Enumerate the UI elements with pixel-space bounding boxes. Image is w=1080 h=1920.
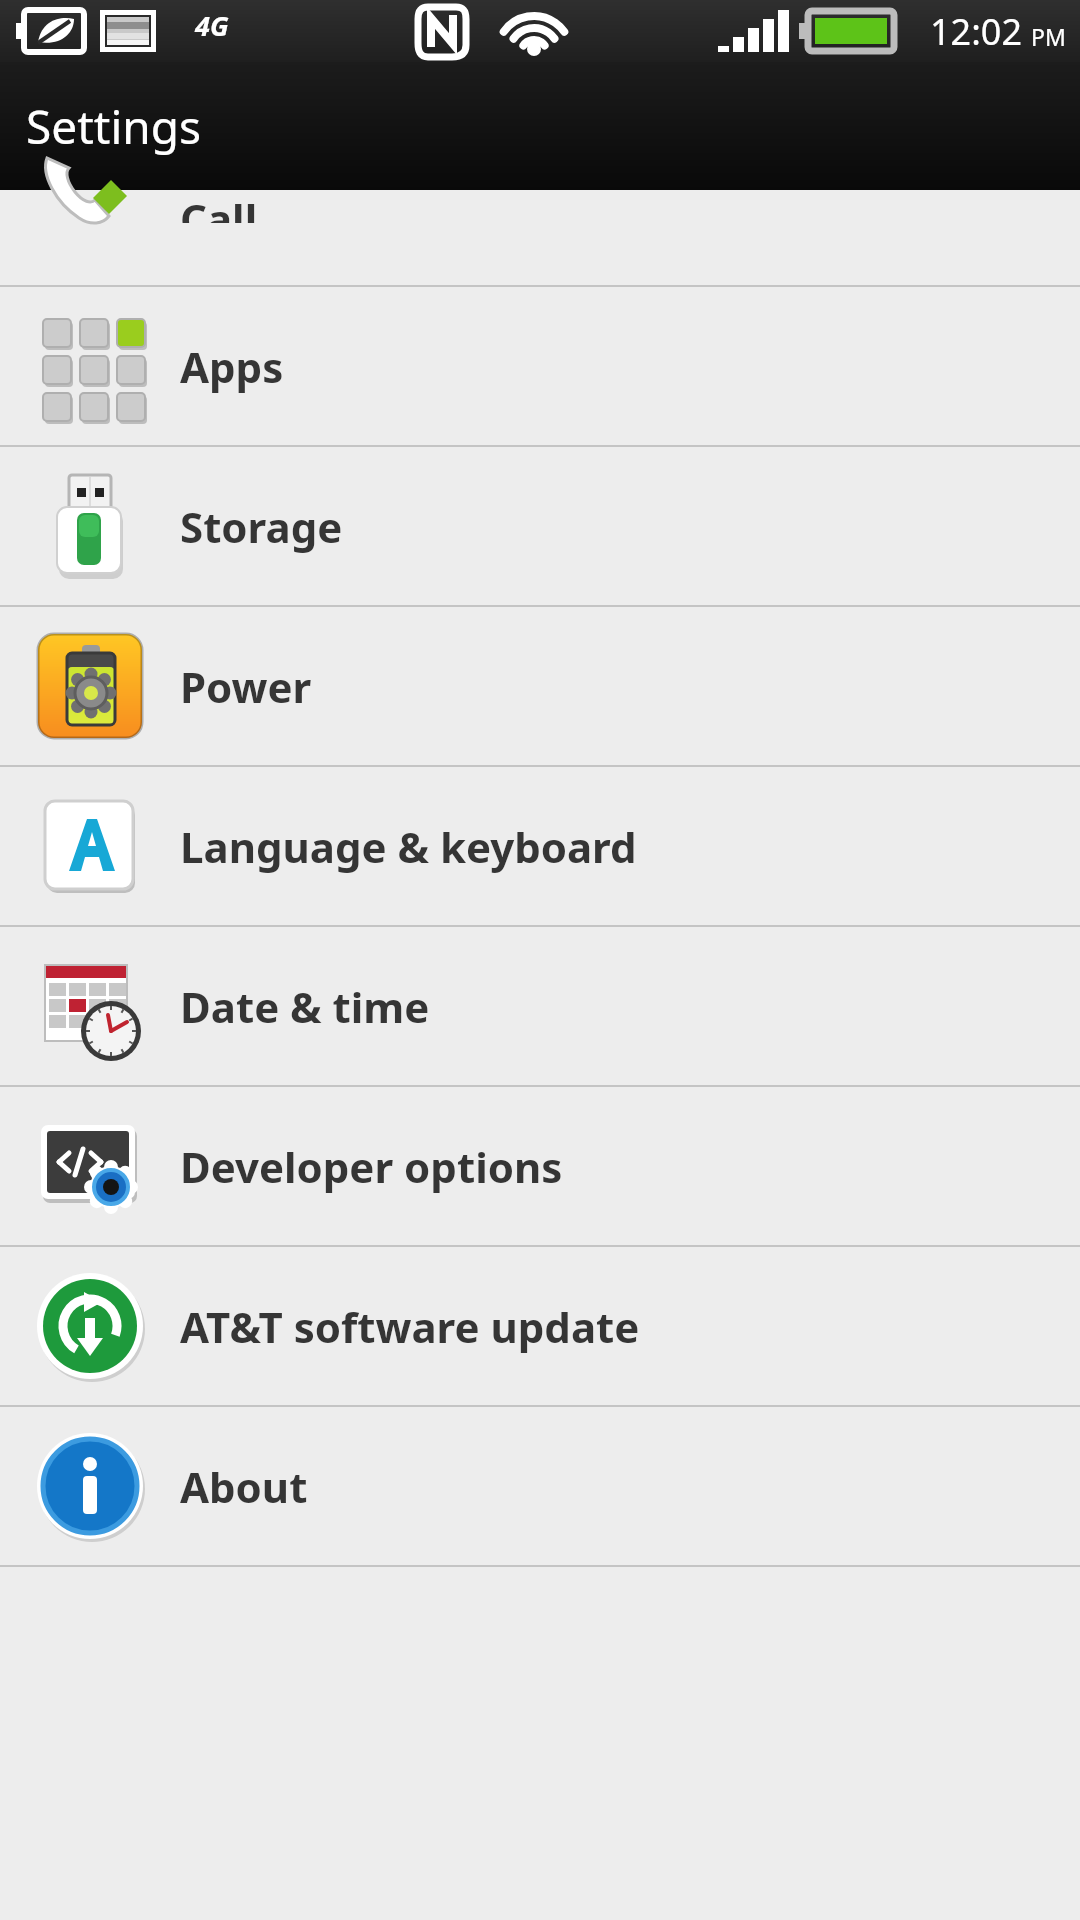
button[interactable]: Power xyxy=(0,607,1080,765)
staticText: Storage xyxy=(180,498,343,555)
button[interactable]: Date & time xyxy=(0,927,1080,1085)
button[interactable]: Language & keyboard xyxy=(0,767,1080,925)
button[interactable]: Apps xyxy=(0,287,1080,445)
staticText: Apps xyxy=(180,338,284,395)
button[interactable]: About xyxy=(0,1407,1080,1565)
staticText: Date & time xyxy=(180,978,430,1035)
staticText: 4G xyxy=(195,7,229,44)
staticText: AT&T software update xyxy=(180,1298,640,1355)
staticText: Language & keyboard xyxy=(180,818,637,875)
button[interactable]: Call xyxy=(0,190,1080,285)
staticText: About xyxy=(180,1458,308,1515)
staticText: Call xyxy=(180,190,258,223)
staticText: Developer options xyxy=(180,1138,563,1195)
button[interactable]: Storage xyxy=(0,447,1080,605)
button[interactable]: Developer options xyxy=(0,1087,1080,1245)
staticText: Power xyxy=(180,658,312,715)
staticText: Settings xyxy=(26,95,202,158)
staticText: 12:02 xyxy=(930,7,1023,56)
button[interactable]: AT&T software update xyxy=(0,1247,1080,1405)
staticText: PM xyxy=(1031,21,1066,52)
